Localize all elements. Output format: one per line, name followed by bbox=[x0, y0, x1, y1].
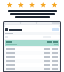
button[interactable] bbox=[5, 67, 59, 71]
button[interactable]: App logo bbox=[5, 28, 8, 31]
button[interactable] bbox=[5, 47, 59, 51]
button[interactable] bbox=[5, 59, 59, 63]
other: Five star rating bbox=[4, 2, 60, 8]
button[interactable] bbox=[5, 40, 59, 46]
button[interactable] bbox=[5, 63, 59, 67]
button[interactable] bbox=[5, 51, 59, 55]
button[interactable] bbox=[5, 55, 59, 59]
